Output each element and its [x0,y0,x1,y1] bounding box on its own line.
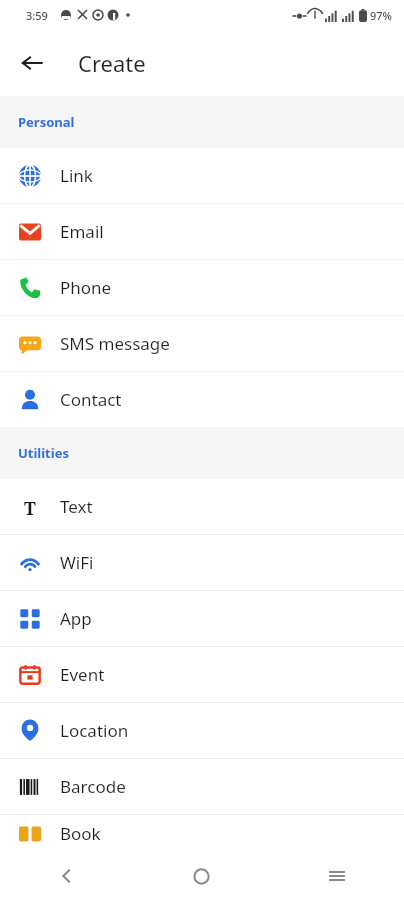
staticText: Barcode [60,775,126,798]
staticText: Phone [60,276,112,299]
staticText: 3:59 [26,8,48,23]
button[interactable]: Back [10,41,54,85]
staticText: Event [60,663,105,686]
staticText: T [24,496,36,518]
staticText: Contact [60,388,122,411]
staticText: WiFi [60,551,94,574]
staticText: Text [60,495,93,518]
button[interactable]: Recent apps [269,852,404,900]
button[interactable]: Contact [0,372,404,427]
button[interactable]: SMS message [0,316,404,371]
button[interactable]: App [0,591,404,646]
button[interactable]: Barcode [0,759,404,814]
button[interactable]: WiFi [0,535,404,590]
staticText: Create [78,48,146,78]
button[interactable]: Event [0,647,404,702]
staticText: App [60,607,92,630]
button[interactable]: Link [0,148,404,203]
button[interactable]: Phone [0,260,404,315]
staticText: Email [60,220,104,243]
button[interactable]: Home [134,852,269,900]
button[interactable]: Book [0,815,404,852]
staticText: Book [60,822,101,845]
staticText: 97% [370,8,392,23]
button[interactable]: Email [0,204,404,259]
staticText: Link [60,164,93,187]
staticText: Location [60,719,129,742]
button[interactable]: Location [0,703,404,758]
staticText: Personal [18,113,75,131]
staticText: SMS message [60,332,170,355]
button[interactable]: T [0,479,404,534]
button[interactable]: Back [0,852,134,900]
staticText: Utilities [18,444,69,462]
